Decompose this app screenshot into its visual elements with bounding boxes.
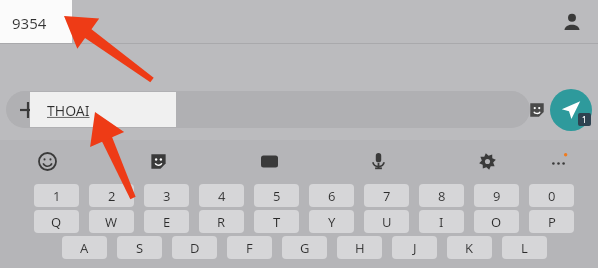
staticText: F — [246, 239, 253, 257]
staticText: 5 — [273, 187, 281, 205]
button[interactable]: 0 — [529, 184, 574, 207]
button[interactable]: Voice input — [363, 146, 393, 176]
staticText: P — [548, 213, 556, 231]
button[interactable]: 2 — [89, 184, 134, 207]
button[interactable]: F — [227, 236, 272, 259]
staticText: 8 — [438, 187, 446, 205]
button[interactable]: K — [447, 236, 492, 259]
button[interactable]: Attach — [16, 98, 40, 122]
button[interactable]: D — [172, 236, 217, 259]
button[interactable]: 5 — [254, 184, 299, 207]
staticText: 1 — [53, 187, 61, 205]
staticText: 3 — [163, 187, 171, 205]
staticText: 7 — [383, 187, 391, 205]
button[interactable]: I — [419, 210, 464, 233]
button[interactable]: Account — [556, 6, 588, 38]
button[interactable]: Y — [309, 210, 354, 233]
staticText: I — [439, 213, 444, 231]
staticText: A — [80, 239, 89, 257]
button[interactable]: L — [502, 236, 547, 259]
button[interactable]: Sticker — [524, 97, 550, 123]
button[interactable]: 6 — [309, 184, 354, 207]
button[interactable]: W — [89, 210, 134, 233]
button[interactable]: 1 — [34, 184, 79, 207]
button[interactable]: Settings — [472, 146, 502, 176]
staticText: E — [163, 213, 171, 231]
button[interactable]: A — [62, 236, 107, 259]
button[interactable]: J — [392, 236, 437, 259]
staticText: Y — [328, 213, 336, 231]
staticText: Q — [51, 213, 62, 231]
button[interactable]: 8 — [419, 184, 464, 207]
staticText: O — [491, 213, 502, 231]
staticText: W — [105, 213, 118, 231]
staticText: J — [413, 239, 417, 257]
staticText: THOAI — [47, 101, 90, 120]
staticText: G — [300, 239, 310, 257]
staticText: 4 — [218, 187, 226, 205]
button[interactable]: Stickers — [143, 146, 173, 176]
staticText: T — [273, 213, 281, 231]
button[interactable]: U — [364, 210, 409, 233]
staticText: 9 — [493, 187, 501, 205]
staticText: L — [521, 239, 528, 257]
staticText: K — [465, 239, 474, 257]
button[interactable] — [6, 91, 530, 128]
button[interactable]: Emoji — [32, 146, 62, 176]
staticText: R — [217, 213, 226, 231]
button[interactable]: 9 — [474, 184, 519, 207]
button[interactable]: S — [117, 236, 162, 259]
staticText: S — [136, 239, 144, 257]
staticText: 6 — [328, 187, 336, 205]
staticText: 0 — [548, 187, 556, 205]
button[interactable]: G — [282, 236, 327, 259]
staticText: 2 — [108, 187, 116, 205]
button[interactable]: H — [337, 236, 382, 259]
staticText: 9354 — [12, 13, 47, 33]
button[interactable]: More options — [543, 146, 573, 176]
button[interactable]: 7 — [364, 184, 409, 207]
button[interactable]: E — [144, 210, 189, 233]
staticText: H — [355, 239, 365, 257]
button[interactable]: P — [529, 210, 574, 233]
button[interactable]: R — [199, 210, 244, 233]
staticText: 1 — [582, 114, 587, 125]
button[interactable]: Q — [34, 210, 79, 233]
button[interactable]: 3 — [144, 184, 189, 207]
button[interactable]: O — [474, 210, 519, 233]
button[interactable]: GIF — [254, 146, 284, 176]
staticText: D — [190, 239, 200, 257]
staticText: U — [382, 213, 392, 231]
button[interactable]: Send — [550, 89, 592, 131]
button[interactable]: 4 — [199, 184, 244, 207]
button[interactable]: T — [254, 210, 299, 233]
